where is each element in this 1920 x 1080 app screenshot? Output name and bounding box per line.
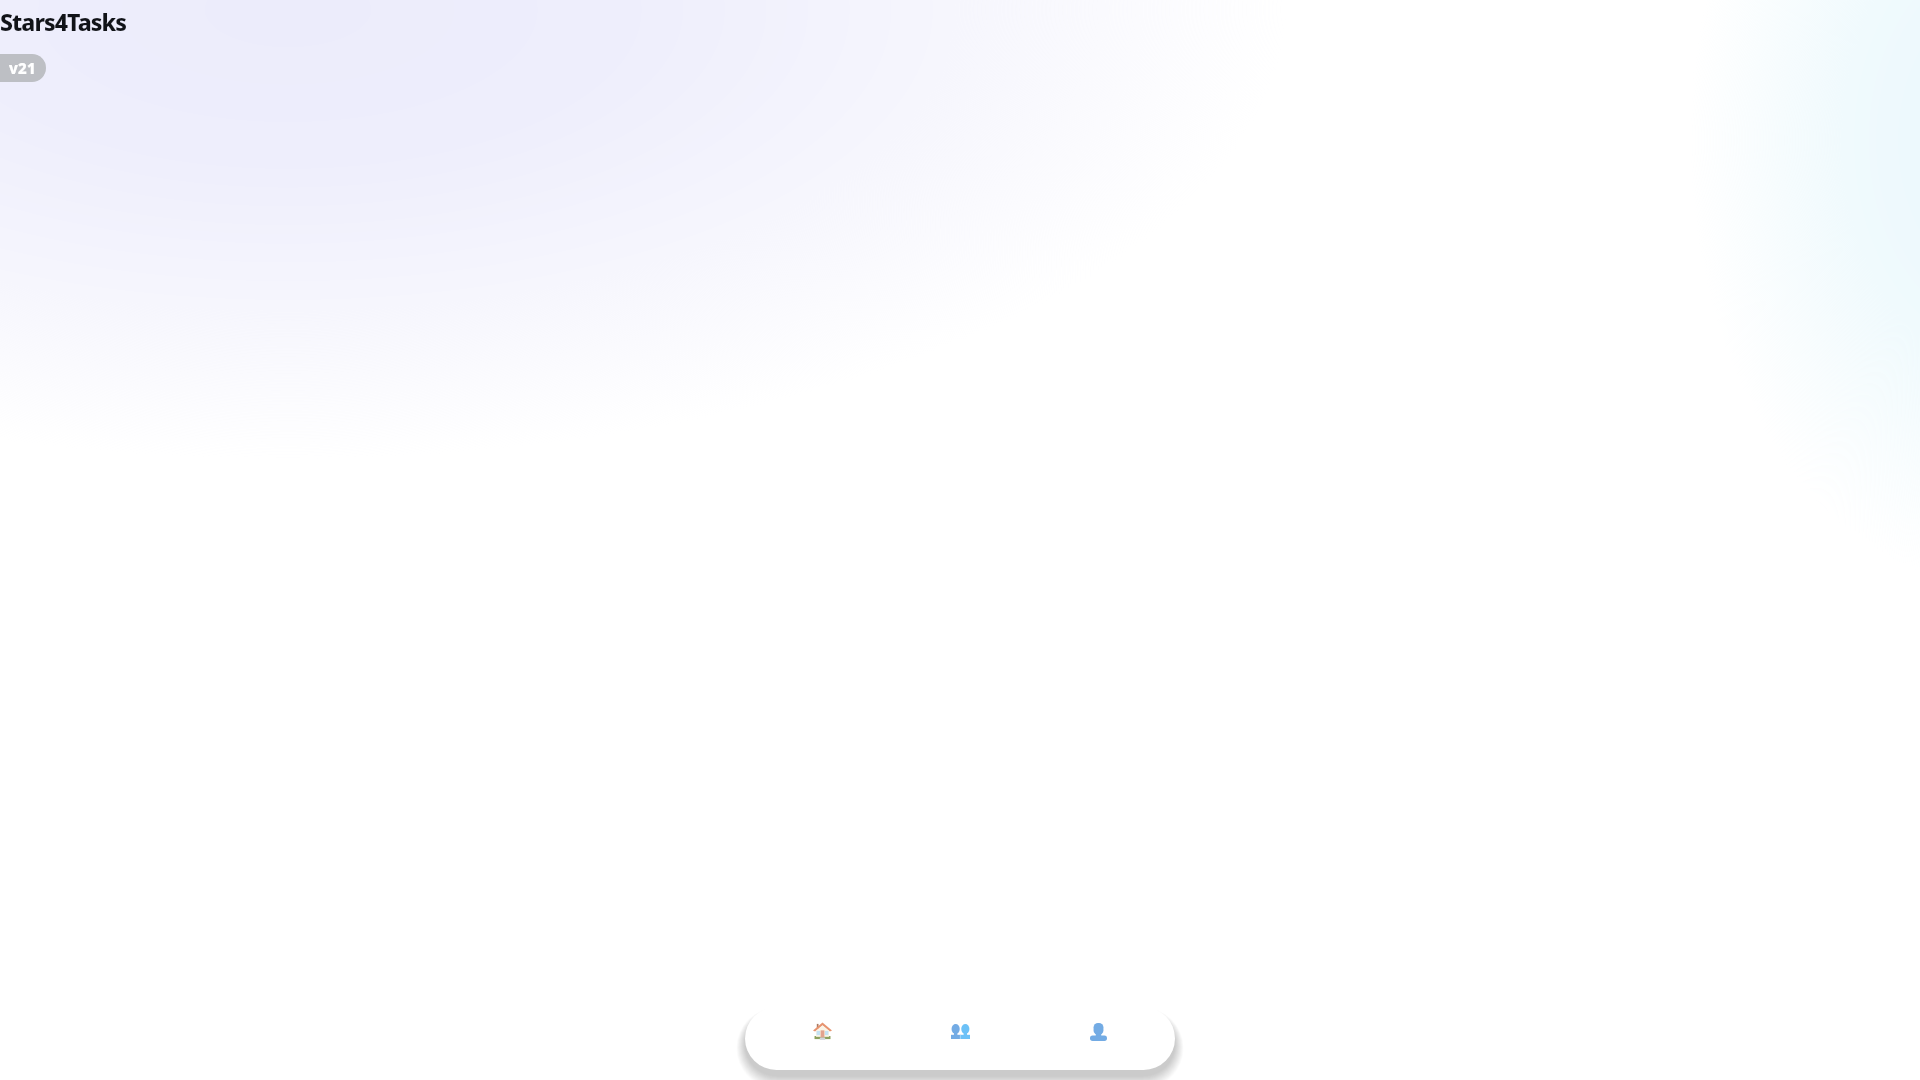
staticText: v21 (9, 58, 36, 78)
button[interactable]: Friends (891, 1007, 1029, 1070)
button[interactable]: Profile (1029, 1007, 1167, 1070)
button[interactable]: Home (753, 1007, 891, 1070)
staticText: Stars4Tasks (0, 6, 127, 37)
button[interactable]: v21 (0, 54, 46, 82)
